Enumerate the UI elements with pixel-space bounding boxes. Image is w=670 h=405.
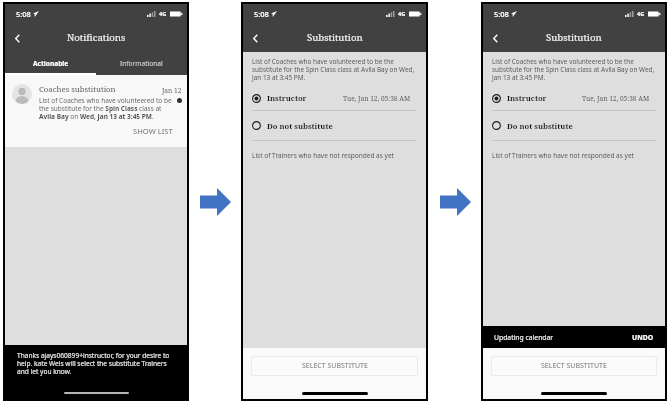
staticText: SELECT SUBSTITUTE: [302, 361, 368, 371]
staticText: 4G: [398, 10, 406, 18]
staticText: Jan 12: [162, 86, 182, 95]
staticText: 5:08: [16, 9, 31, 19]
staticText: Substitution: [546, 31, 602, 44]
staticText: Instructor: [507, 93, 582, 103]
staticText: Tue, Jan 12, 05:38 AM: [343, 94, 411, 103]
staticText: 4G: [637, 10, 645, 18]
staticText: List of Coaches who have volunteered to …: [492, 57, 659, 82]
staticText: List of Trainers who have not responded …: [492, 151, 634, 160]
button[interactable]: Do not substitute: [243, 111, 426, 140]
staticText: List of Trainers who have not responded …: [252, 151, 394, 160]
button[interactable]: SELECT SUBSTITUTE: [251, 356, 418, 376]
button[interactable]: UNDO: [632, 333, 654, 342]
staticText: Informational: [120, 59, 163, 68]
staticText: Do not substitute: [267, 121, 333, 131]
staticText: 5:08: [254, 9, 269, 19]
staticText: Thanks ajays060899+instructor, for your …: [17, 351, 174, 376]
staticText: Tue, Jan 12, 05:38 AM: [582, 94, 650, 103]
staticText: Coaches substitution: [39, 84, 162, 95]
staticText: Do not substitute: [507, 121, 573, 131]
button[interactable]: Back: [10, 31, 24, 45]
staticText: Instructor: [267, 93, 343, 103]
staticText: UNDO: [632, 333, 654, 342]
staticText: 5:08: [494, 9, 509, 19]
button[interactable]: SHOW LIST: [130, 124, 176, 138]
button[interactable]: Instructor: [483, 86, 665, 110]
button[interactable]: Informational: [96, 52, 187, 75]
staticText: SELECT SUBSTITUTE: [541, 361, 607, 371]
staticText: SHOW LIST: [133, 126, 173, 136]
staticText: Actionable: [33, 59, 69, 68]
staticText: 4G: [159, 10, 167, 18]
button[interactable]: Instructor: [243, 86, 426, 110]
staticText: List of Coaches who have volunteered to …: [39, 96, 173, 121]
staticText: Substitution: [307, 31, 363, 44]
staticText: Notifications: [67, 31, 126, 44]
button[interactable]: Do not substitute: [483, 111, 665, 140]
button[interactable]: Back: [488, 31, 502, 45]
staticText: List of Coaches who have volunteered to …: [252, 57, 420, 82]
button[interactable]: Back: [248, 31, 262, 45]
button[interactable]: Actionable: [5, 52, 96, 75]
staticText: Updating calendar: [494, 333, 554, 342]
button[interactable]: SELECT SUBSTITUTE: [491, 356, 657, 376]
